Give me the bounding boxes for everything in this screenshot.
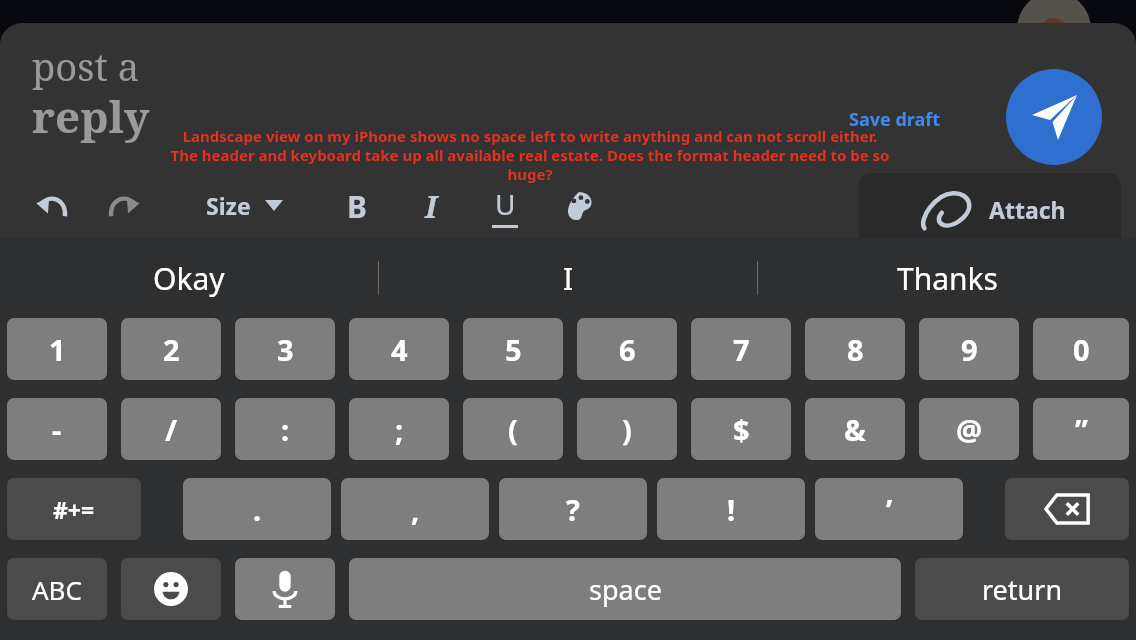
staticText: ’	[886, 490, 893, 529]
staticText: :	[281, 410, 290, 449]
staticText: I	[563, 258, 574, 299]
staticText: ABC	[32, 572, 82, 607]
button[interactable]: I	[379, 238, 757, 318]
button[interactable]: :	[235, 398, 335, 460]
staticText: Thanks	[897, 258, 998, 299]
staticText: reply	[32, 86, 150, 146]
staticText: 9	[961, 330, 978, 369]
button[interactable]: ABC	[7, 558, 107, 620]
staticText: 5	[505, 330, 522, 369]
staticText: Save draft	[849, 107, 941, 132]
button[interactable]: &	[805, 398, 905, 460]
button[interactable]: Backspace	[1005, 478, 1129, 540]
button[interactable]: Okay	[0, 238, 378, 318]
staticText: Size	[206, 190, 251, 221]
staticText: )	[622, 410, 632, 449]
button[interactable]: space	[349, 558, 901, 620]
button[interactable]: Thanks	[758, 238, 1136, 318]
button[interactable]: return	[915, 558, 1129, 620]
button[interactable]: #+=	[7, 478, 141, 540]
button[interactable]: $	[691, 398, 791, 460]
button[interactable]: Dictation	[235, 558, 335, 620]
staticText: ;	[395, 410, 404, 449]
button[interactable]: Send reply	[1006, 69, 1102, 165]
button[interactable]: 8	[805, 318, 905, 380]
staticText: ?	[566, 490, 580, 529]
button[interactable]: B	[329, 178, 385, 234]
button[interactable]: Attach	[859, 173, 1121, 238]
button[interactable]: 1	[7, 318, 107, 380]
staticText: return	[982, 571, 1063, 608]
button[interactable]: .	[183, 478, 331, 540]
button[interactable]: Undo	[24, 178, 80, 234]
staticText: /	[165, 410, 178, 449]
staticText: Okay	[153, 258, 225, 299]
button[interactable]: )	[577, 398, 677, 460]
staticText: 2	[163, 330, 180, 369]
button[interactable]: 6	[577, 318, 677, 380]
staticText: $	[733, 410, 750, 449]
button[interactable]: 3	[235, 318, 335, 380]
staticText: -	[52, 410, 62, 449]
staticText: 0	[1073, 330, 1090, 369]
button[interactable]: ”	[1033, 398, 1129, 460]
button[interactable]: !	[657, 478, 805, 540]
button[interactable]: Text color	[551, 178, 607, 234]
staticText: 3	[277, 330, 294, 369]
staticText: ”	[1075, 410, 1088, 449]
button[interactable]: 2	[121, 318, 221, 380]
button[interactable]: ’	[815, 478, 963, 540]
staticText: U	[495, 185, 516, 223]
button[interactable]: I	[403, 178, 459, 234]
button[interactable]: ?	[499, 478, 647, 540]
staticText: 4	[391, 330, 408, 369]
staticText: @	[956, 410, 983, 449]
button[interactable]: 4	[349, 318, 449, 380]
staticText: 8	[847, 330, 864, 369]
staticText: !	[727, 490, 736, 529]
staticText: Attach	[989, 194, 1066, 225]
button[interactable]: ,	[341, 478, 489, 540]
button[interactable]: ;	[349, 398, 449, 460]
button[interactable]: 7	[691, 318, 791, 380]
staticText: 1	[49, 330, 66, 369]
button[interactable]: Save draft	[845, 103, 945, 136]
staticText: #+=	[53, 494, 95, 525]
staticText: B	[347, 186, 367, 227]
staticText: post a	[32, 40, 140, 92]
staticText: (	[508, 410, 518, 449]
button[interactable]: /	[121, 398, 221, 460]
staticText: .	[253, 490, 262, 529]
button[interactable]: -	[7, 398, 107, 460]
staticText: 7	[733, 330, 750, 369]
staticText: 6	[619, 330, 636, 369]
button[interactable]: Emoji	[121, 558, 221, 620]
staticText: I	[425, 186, 438, 227]
staticText: space	[589, 571, 662, 608]
button[interactable]: 9	[919, 318, 1019, 380]
button[interactable]: @	[919, 398, 1019, 460]
staticText: ,	[411, 490, 420, 529]
button[interactable]: 5	[463, 318, 563, 380]
button[interactable]: Underline	[477, 178, 533, 234]
staticText: Landscape view on my iPhone shows no spa…	[170, 126, 890, 184]
button[interactable]: Redo	[96, 178, 152, 234]
button[interactable]: 0	[1033, 318, 1129, 380]
button[interactable]: Size	[200, 182, 289, 229]
staticText: &	[844, 410, 866, 449]
button[interactable]: (	[463, 398, 563, 460]
